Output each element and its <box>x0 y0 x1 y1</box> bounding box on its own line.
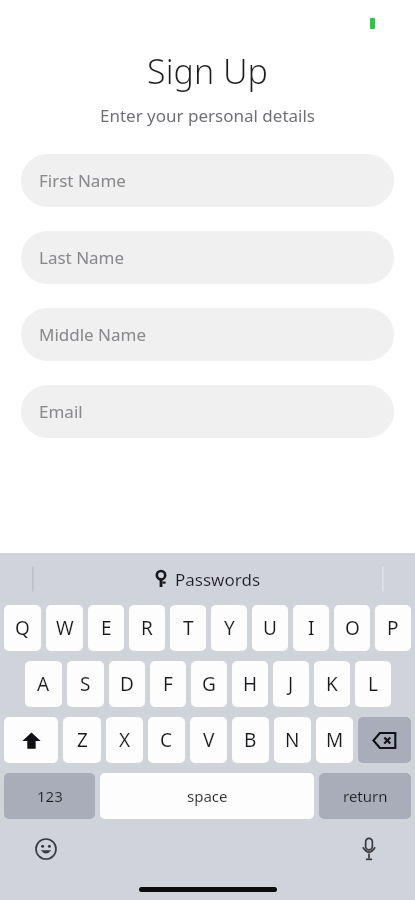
button[interactable]: space <box>100 773 314 819</box>
staticText: Enter your personal details <box>100 104 315 127</box>
staticText: Z <box>77 727 88 753</box>
button[interactable]: Q <box>4 605 41 651</box>
staticText: F <box>163 671 173 697</box>
button[interactable]: N <box>274 717 311 763</box>
staticText: S <box>80 671 91 697</box>
button[interactable]: Passwords <box>0 553 415 605</box>
staticText: First Name <box>39 169 126 192</box>
staticText: U <box>263 615 277 641</box>
staticText: L <box>368 671 378 697</box>
staticText: K <box>326 671 338 697</box>
button[interactable]: E <box>88 605 124 651</box>
staticText: Sign Up <box>147 48 268 94</box>
button[interactable]: X <box>106 717 143 763</box>
button[interactable]: Z <box>63 717 101 763</box>
button[interactable]: Backspace <box>358 717 411 763</box>
button[interactable]: S <box>67 661 104 707</box>
staticText: E <box>101 615 112 641</box>
staticText: Last Name <box>39 246 125 269</box>
staticText: space <box>187 786 228 806</box>
button[interactable]: Shift <box>4 717 58 763</box>
staticText: V <box>203 727 215 753</box>
button[interactable]: D <box>109 661 145 707</box>
staticText: return <box>343 786 388 806</box>
button[interactable]: L <box>355 661 391 707</box>
button[interactable]: O <box>334 605 370 651</box>
button[interactable]: V <box>190 717 227 763</box>
button[interactable]: K <box>314 661 350 707</box>
staticText: A <box>37 671 50 697</box>
staticText: H <box>243 671 258 697</box>
button[interactable]: Emoji <box>30 833 62 865</box>
button[interactable]: A <box>25 661 62 707</box>
button[interactable]: P <box>375 605 411 651</box>
button[interactable]: H <box>232 661 268 707</box>
button[interactable]: Dictation <box>353 833 385 865</box>
button[interactable]: R <box>129 605 165 651</box>
button[interactable]: 123 <box>4 773 95 819</box>
button[interactable]: Y <box>211 605 247 651</box>
button[interactable]: G <box>191 661 227 707</box>
staticText: Email <box>39 400 83 423</box>
staticText: G <box>202 671 216 697</box>
staticText: Middle Name <box>39 323 147 346</box>
staticText: C <box>160 727 173 753</box>
staticText: Y <box>224 615 235 641</box>
staticText: T <box>183 615 194 641</box>
staticText: X <box>119 727 131 753</box>
staticText: Passwords <box>175 568 261 591</box>
staticText: W <box>56 615 74 641</box>
button[interactable]: T <box>170 605 206 651</box>
button[interactable]: Last Name <box>21 231 394 284</box>
staticText: B <box>244 727 257 753</box>
button[interactable]: Email <box>21 385 394 438</box>
staticText: P <box>387 615 399 641</box>
button[interactable]: B <box>232 717 269 763</box>
button[interactable]: C <box>148 717 185 763</box>
staticText: O <box>345 615 360 641</box>
staticText: N <box>285 727 300 753</box>
button[interactable]: W <box>46 605 83 651</box>
staticText: M <box>326 727 344 753</box>
button[interactable]: U <box>252 605 288 651</box>
staticText: R <box>141 615 153 641</box>
button[interactable]: First Name <box>21 154 394 207</box>
staticText: 123 <box>37 786 63 806</box>
button[interactable]: return <box>319 773 411 819</box>
staticText: D <box>120 671 134 697</box>
button[interactable]: Middle Name <box>21 308 394 361</box>
button[interactable]: I <box>293 605 329 651</box>
staticText: J <box>288 671 294 697</box>
button[interactable]: F <box>150 661 186 707</box>
staticText: I <box>308 615 315 641</box>
staticText: Q <box>15 615 30 641</box>
button[interactable]: J <box>273 661 309 707</box>
button[interactable]: M <box>316 717 353 763</box>
